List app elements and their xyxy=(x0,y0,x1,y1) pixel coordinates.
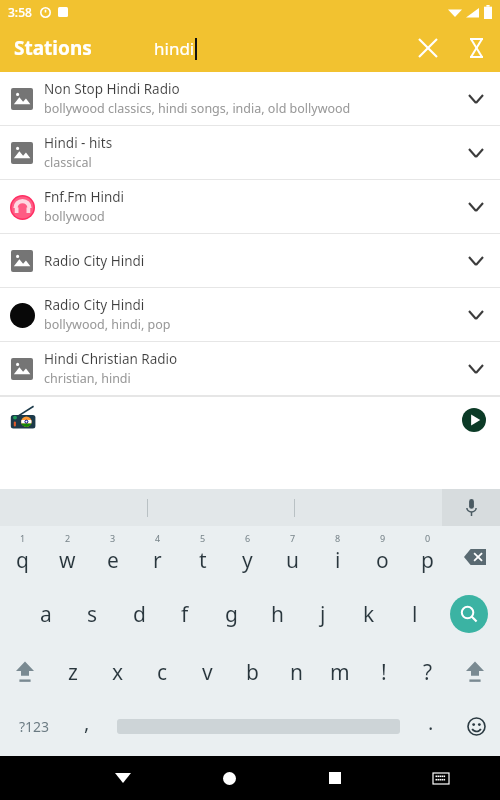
staticText: c xyxy=(157,658,168,687)
button[interactable]: Emoji xyxy=(452,701,500,751)
staticText: ! xyxy=(381,658,387,687)
button[interactable]: n xyxy=(274,643,318,701)
staticText: 7 xyxy=(290,532,296,544)
staticText: d xyxy=(133,600,146,629)
staticText: 6 xyxy=(245,532,251,544)
button[interactable]: Search xyxy=(438,585,500,643)
staticText: s xyxy=(87,600,98,629)
button[interactable]: 2 xyxy=(45,529,90,585)
staticText: hindi xyxy=(154,37,195,60)
staticText: christian, hindi xyxy=(44,370,131,387)
button[interactable]: ! xyxy=(362,643,406,701)
staticText: 4 xyxy=(155,532,161,544)
button[interactable]: Radio City Hindi xyxy=(0,234,500,287)
staticText: i xyxy=(335,546,341,575)
button[interactable]: v xyxy=(185,643,230,701)
button[interactable]: g xyxy=(208,585,254,643)
staticText: , xyxy=(84,709,90,736)
button[interactable]: 4 xyxy=(135,529,180,585)
button[interactable]: d xyxy=(116,585,162,643)
button[interactable]: ? xyxy=(406,643,450,701)
button[interactable]: Fnf.Fm Hindi xyxy=(0,180,500,233)
button[interactable]: 3 xyxy=(90,529,135,585)
button[interactable]: c xyxy=(140,643,185,701)
button[interactable]: 6 xyxy=(225,529,270,585)
button[interactable]: Expand xyxy=(452,75,500,123)
staticText: q xyxy=(16,546,29,575)
staticText: Fnf.Fm Hindi xyxy=(44,188,125,206)
button[interactable]: x xyxy=(95,643,140,701)
button[interactable]: f xyxy=(162,585,208,643)
staticText: n xyxy=(290,658,303,687)
staticText: Non Stop Hindi Radio xyxy=(44,80,180,98)
button[interactable]: 8 xyxy=(315,529,360,585)
button[interactable]: Radio City Hindi xyxy=(0,288,500,341)
staticText: classical xyxy=(44,154,92,171)
staticText: o xyxy=(376,546,389,575)
button[interactable]: Hindi - hits xyxy=(0,126,500,179)
button[interactable]: b xyxy=(230,643,274,701)
button[interactable]: Recents xyxy=(313,756,357,800)
staticText: e xyxy=(107,546,119,575)
button[interactable]: Voice input xyxy=(442,489,500,526)
button[interactable]: Back xyxy=(101,756,145,800)
button[interactable]: m xyxy=(318,643,362,701)
button[interactable]: j xyxy=(300,585,346,643)
staticText: Radio City Hindi xyxy=(44,252,145,270)
staticText: ? xyxy=(423,658,433,687)
staticText: 1 xyxy=(20,532,26,544)
button[interactable]: l xyxy=(392,585,438,643)
staticText: a xyxy=(40,600,52,629)
staticText: 3 xyxy=(110,532,116,544)
button[interactable]: , xyxy=(68,701,106,751)
staticText: t xyxy=(199,546,207,575)
staticText: l xyxy=(412,600,418,629)
staticText: Hindi Christian Radio xyxy=(44,350,178,368)
button[interactable]: 7 xyxy=(270,529,315,585)
staticText: h xyxy=(271,600,284,629)
button[interactable]: 1 xyxy=(0,529,45,585)
button[interactable]: 0 xyxy=(405,529,450,585)
button[interactable]: Clear search xyxy=(404,24,452,72)
button[interactable]: Expand xyxy=(452,345,500,393)
button[interactable]: s xyxy=(69,585,116,643)
staticText: j xyxy=(320,600,326,629)
button[interactable]: Expand xyxy=(452,237,500,285)
button[interactable]: 9 xyxy=(360,529,405,585)
staticText: . xyxy=(428,709,434,736)
staticText: 9 xyxy=(380,532,386,544)
button[interactable]: Home xyxy=(207,756,251,800)
staticText: bollywood classics, hindi songs, india, … xyxy=(44,100,351,117)
button[interactable]: k xyxy=(346,585,392,643)
button[interactable]: Expand xyxy=(452,129,500,177)
button[interactable]: Current station xyxy=(6,402,42,438)
staticText: r xyxy=(153,546,162,575)
button[interactable]: Expand xyxy=(452,183,500,231)
button[interactable]: z xyxy=(50,643,95,701)
button[interactable]: Shift xyxy=(0,643,50,701)
staticText: x xyxy=(112,658,124,687)
button[interactable]: Space xyxy=(106,701,410,751)
staticText: Hindi - hits xyxy=(44,134,113,152)
button[interactable]: ?123 xyxy=(0,701,68,751)
button[interactable]: Shift xyxy=(450,643,500,701)
button[interactable]: Non Stop Hindi Radio xyxy=(0,72,500,125)
staticText: 0 xyxy=(425,532,431,544)
button[interactable]: Switch keyboard xyxy=(419,756,463,800)
button[interactable]: Play xyxy=(452,398,496,442)
button[interactable]: Hindi Christian Radio xyxy=(0,342,500,395)
staticText: 2 xyxy=(65,532,71,544)
button[interactable]: Sleep timer xyxy=(452,24,500,72)
staticText: v xyxy=(202,658,213,687)
button[interactable]: h xyxy=(254,585,300,643)
button[interactable]: a xyxy=(22,585,69,643)
button[interactable]: Expand xyxy=(452,291,500,339)
button[interactable]: 5 xyxy=(180,529,225,585)
staticText: Radio City Hindi xyxy=(44,296,145,314)
button[interactable]: Backspace xyxy=(450,529,500,585)
button[interactable]: . xyxy=(410,701,452,751)
staticText: p xyxy=(421,546,434,575)
